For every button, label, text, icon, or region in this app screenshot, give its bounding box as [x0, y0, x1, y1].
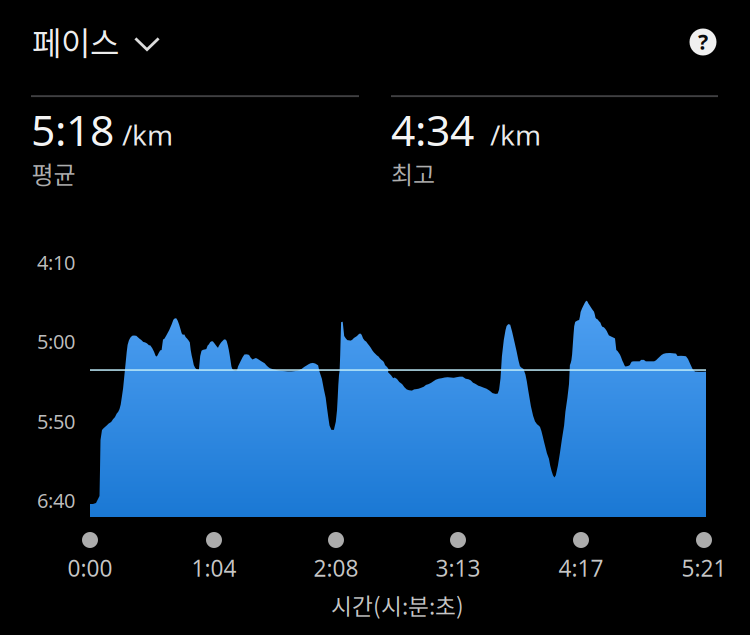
- button[interactable]: 페이스: [32, 10, 170, 56]
- staticText: 1:04: [191, 553, 236, 583]
- staticText: 시간(시:분:초): [331, 588, 464, 621]
- staticText: 페이스: [32, 18, 119, 64]
- staticText: 최고: [391, 156, 435, 191]
- staticText: 2:08: [313, 553, 358, 583]
- staticText: 4:34: [391, 101, 474, 158]
- staticText: 4:10: [37, 249, 75, 276]
- staticText: 3:13: [435, 553, 480, 583]
- button[interactable]: 도움말: [680, 19, 726, 65]
- staticText: 5:21: [681, 553, 726, 583]
- staticText: 평균: [31, 156, 75, 191]
- staticText: 5:00: [37, 328, 75, 355]
- staticText: /km: [490, 116, 541, 153]
- staticText: 5:50: [37, 408, 75, 435]
- staticText: 4:17: [558, 553, 603, 583]
- staticText: 5:18: [31, 101, 114, 158]
- staticText: ?: [698, 27, 708, 56]
- staticText: 6:40: [37, 487, 75, 514]
- staticText: 0:00: [67, 553, 112, 583]
- staticText: /km: [122, 116, 173, 153]
